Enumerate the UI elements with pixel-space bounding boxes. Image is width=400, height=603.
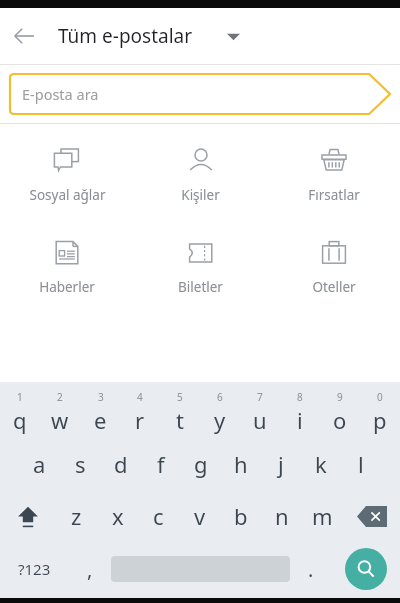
staticText: 7 [257,390,263,404]
button[interactable]: Shift [0,490,56,542]
button[interactable]: f [141,438,181,490]
button[interactable]: m [302,490,343,542]
button[interactable]: z [56,490,97,542]
button[interactable]: Contacts [134,142,267,208]
staticText: Haberler [39,278,95,296]
staticText: w [51,405,69,435]
button[interactable]: Deals [267,142,400,208]
button[interactable]: 5 [160,386,200,438]
button[interactable]: j [261,438,301,490]
staticText: 6 [217,390,223,404]
staticText: , [87,556,93,583]
staticText: b [234,501,248,531]
staticText: l [358,449,364,479]
button[interactable]: h [221,438,261,490]
staticText: u [253,405,267,435]
button[interactable]: Back [0,12,48,60]
staticText: Fırsatlar [308,186,360,204]
button[interactable]: 8 [280,386,320,438]
staticText: E-posta ara [22,84,99,104]
button[interactable]: 3 [80,386,120,438]
button[interactable]: l [341,438,381,490]
staticText: 5 [177,390,183,404]
staticText: Kişiler [181,186,220,204]
button[interactable]: 1 [0,386,40,438]
staticText: q [13,405,27,435]
staticText: k [315,449,327,479]
staticText: z [71,501,82,531]
staticText: n [275,501,289,531]
button[interactable]: a [19,438,60,490]
button[interactable]: 7 [240,386,280,438]
button[interactable]: 2 [40,386,80,438]
button[interactable]: , [69,542,111,596]
button[interactable]: ?123 [0,542,69,596]
staticText: 2 [57,390,63,404]
staticText: h [234,449,248,479]
button[interactable]: d [101,438,141,490]
staticText: c [153,501,164,531]
staticText: f [157,449,165,479]
button[interactable]: c [138,490,179,542]
button[interactable]: k [301,438,341,490]
staticText: . [308,556,314,583]
button[interactable]: E-posta ara [10,74,390,114]
button[interactable]: 4 [120,386,160,438]
staticText: s [75,449,86,479]
button[interactable]: v [179,490,220,542]
staticText: Tüm e-postalar [58,23,193,49]
staticText: 8 [297,390,303,404]
staticText: 0 [377,390,383,404]
button[interactable]: n [261,490,302,542]
staticText: x [112,501,124,531]
staticText: m [312,501,333,531]
staticText: 1 [17,390,23,404]
button[interactable] [111,542,290,596]
staticText: Sosyal ağlar [29,186,106,204]
staticText: v [194,501,206,531]
staticText: p [373,405,387,435]
staticText: Biletler [178,278,223,296]
staticText: e [94,405,107,435]
staticText: ?123 [18,559,51,579]
staticText: d [114,449,128,479]
button[interactable]: . [290,542,332,596]
button[interactable]: 6 [200,386,240,438]
button[interactable]: Tickets [134,234,267,300]
button[interactable]: g [181,438,221,490]
button[interactable]: News [0,234,134,300]
staticText: y [214,405,226,435]
button[interactable]: Expand folders [215,18,251,54]
staticText: 3 [98,390,104,404]
button[interactable]: 0 [360,386,400,438]
button[interactable]: Search [332,542,400,596]
staticText: o [333,405,347,435]
button[interactable]: x [97,490,138,542]
staticText: j [278,449,284,479]
button[interactable]: 9 [320,386,360,438]
staticText: a [33,449,46,479]
staticText: r [135,405,145,435]
button[interactable]: Hotels [267,234,400,300]
staticText: 9 [337,390,343,404]
button[interactable]: s [60,438,101,490]
staticText: Oteller [312,278,356,296]
staticText: t [176,405,184,435]
button[interactable]: Backspace [343,490,400,542]
button[interactable]: Social networks [0,142,134,208]
button[interactable]: b [220,490,261,542]
staticText: 4 [137,390,143,404]
staticText: g [194,449,208,479]
staticText: i [297,405,303,435]
